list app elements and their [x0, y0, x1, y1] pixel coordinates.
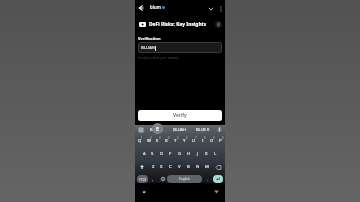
button[interactable]: F	[166, 148, 175, 160]
staticText: 6	[186, 136, 188, 140]
button[interactable]: Q	[135, 135, 144, 147]
button[interactable]: P	[216, 135, 225, 147]
button[interactable]: Task list	[215, 21, 222, 28]
button[interactable]: N	[193, 161, 202, 173]
button[interactable]: Enter	[213, 175, 223, 183]
button[interactable]: ,	[149, 175, 157, 183]
button[interactable]: Verify	[138, 110, 222, 121]
staticText: BLUE K	[196, 127, 210, 132]
button[interactable]: BLUAH	[146, 125, 168, 134]
staticText: DeFi Risks: Key Insights	[149, 21, 207, 28]
button[interactable]: Backspace	[211, 161, 225, 173]
staticText: .	[207, 176, 209, 182]
staticText: D	[160, 151, 164, 157]
button[interactable]: Emoji	[159, 175, 167, 183]
staticText: 4	[168, 136, 170, 140]
button[interactable]: R	[162, 135, 171, 147]
staticText: 5	[177, 136, 179, 140]
staticText: 8	[204, 136, 206, 140]
button[interactable]: Voice input	[214, 125, 225, 134]
staticText: E	[156, 138, 159, 144]
button[interactable]: M	[202, 161, 211, 173]
staticText: T	[174, 138, 177, 144]
staticText: X	[160, 164, 163, 170]
button[interactable]: C	[166, 161, 175, 173]
staticText: Q	[138, 138, 142, 144]
staticText: A	[143, 151, 146, 157]
button[interactable]: S	[148, 148, 157, 160]
staticText: BLUAH	[141, 45, 155, 51]
staticText: BLUAH	[173, 127, 187, 132]
staticText: H	[187, 151, 191, 157]
staticText: Verify	[173, 112, 187, 119]
button[interactable]: ?123	[137, 175, 148, 183]
staticText: M	[205, 164, 209, 170]
staticText: N	[196, 164, 200, 170]
staticText: 2	[150, 136, 152, 140]
staticText: ?123	[139, 177, 147, 182]
staticText: blum	[150, 4, 161, 10]
button[interactable]: B	[184, 161, 193, 173]
staticText: U	[192, 138, 196, 144]
staticText: K	[205, 151, 208, 157]
button[interactable]: Clipboard	[135, 125, 146, 134]
staticText: S	[151, 151, 154, 157]
staticText: Z	[152, 164, 155, 170]
staticText: P	[219, 138, 222, 144]
staticText: J	[197, 151, 199, 157]
button[interactable]: .	[204, 175, 212, 183]
staticText: W	[147, 138, 151, 144]
button[interactable]: O	[207, 135, 216, 147]
button[interactable]: V	[175, 161, 184, 173]
button[interactable]: X	[157, 161, 166, 173]
staticText: Verification	[138, 36, 161, 41]
button[interactable]: A	[140, 148, 148, 160]
button[interactable]: T	[171, 135, 180, 147]
staticText: BLUAH	[150, 127, 164, 132]
button[interactable]: BLUAH	[168, 125, 191, 134]
staticText: G	[178, 151, 182, 157]
staticText: B	[187, 164, 190, 170]
button[interactable]: BLUE K	[191, 125, 214, 134]
button[interactable]: Shift	[135, 161, 149, 173]
button[interactable]: More options	[217, 5, 225, 13]
button[interactable]: English	[167, 175, 202, 183]
button[interactable]: J	[193, 148, 202, 160]
staticText: V	[178, 164, 181, 170]
staticText: Verify to claim your reward	[138, 56, 179, 60]
staticText: 3	[159, 136, 161, 140]
button[interactable]: D	[157, 148, 166, 160]
button[interactable]: U	[189, 135, 198, 147]
button[interactable]: BLUAH	[138, 42, 222, 53]
staticText: 1	[141, 136, 143, 140]
button[interactable]: G	[175, 148, 184, 160]
button[interactable]: Y	[180, 135, 189, 147]
button[interactable]: K	[202, 148, 211, 160]
staticText: R	[165, 138, 168, 144]
button[interactable]: W	[144, 135, 153, 147]
button[interactable]: I	[198, 135, 207, 147]
button[interactable]: Back	[137, 4, 145, 12]
button[interactable]: Z	[149, 161, 157, 173]
staticText: L	[214, 151, 217, 157]
button[interactable]: Collapse	[207, 5, 215, 13]
staticText: 9	[213, 136, 215, 140]
button[interactable]: H	[184, 148, 193, 160]
staticText: C	[169, 164, 172, 170]
staticText: O	[210, 138, 214, 144]
staticText: F	[169, 151, 172, 157]
staticText: Y	[183, 138, 186, 144]
staticText: E	[156, 125, 160, 133]
staticText: 0	[222, 136, 224, 140]
staticText: 7	[195, 136, 197, 140]
staticText: I	[202, 138, 204, 144]
button[interactable]: E	[153, 135, 162, 147]
staticText: English	[179, 177, 190, 181]
staticText: ,	[152, 176, 154, 182]
button[interactable]: L	[211, 148, 220, 160]
